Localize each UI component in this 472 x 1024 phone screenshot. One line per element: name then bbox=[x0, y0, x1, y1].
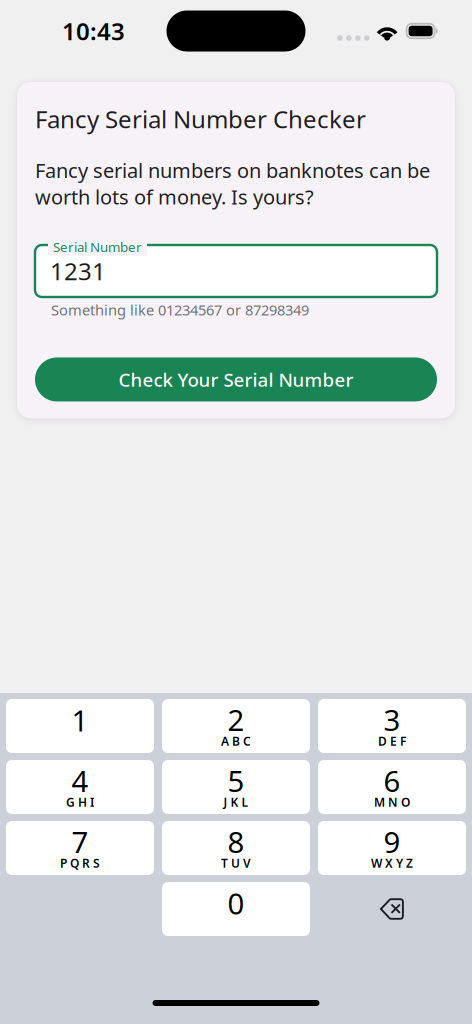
staticText: W X Y Z bbox=[371, 855, 413, 871]
staticText: 1 bbox=[71, 700, 88, 739]
staticText: T U V bbox=[221, 855, 251, 871]
staticText: Fancy Serial Number Checker bbox=[35, 103, 366, 135]
staticText: 8 bbox=[227, 822, 244, 861]
staticText: Fancy serial numbers on banknotes can be… bbox=[35, 157, 430, 210]
button[interactable]: Delete bbox=[318, 882, 466, 936]
staticText: 7 bbox=[71, 822, 88, 861]
staticText: 6 bbox=[383, 761, 400, 800]
button[interactable]: 9 bbox=[318, 821, 466, 875]
staticText: J K L bbox=[223, 794, 248, 810]
button[interactable]: Check Your Serial Number bbox=[35, 357, 437, 401]
staticText: Serial Number bbox=[53, 238, 142, 256]
staticText: Something like 01234567 or 87298349 bbox=[51, 300, 309, 319]
staticText: D E F bbox=[378, 733, 406, 749]
staticText: G H I bbox=[66, 794, 94, 810]
staticText: M N O bbox=[374, 794, 410, 810]
staticText: 3 bbox=[383, 700, 400, 739]
staticText: 0 bbox=[227, 883, 244, 922]
button[interactable]: 2 bbox=[162, 699, 310, 753]
button[interactable]: 5 bbox=[162, 760, 310, 814]
staticText: 1231 bbox=[50, 255, 106, 287]
staticText: 9 bbox=[383, 822, 400, 861]
staticText: 4 bbox=[71, 761, 88, 800]
staticText: 10:43 bbox=[62, 15, 125, 47]
button[interactable]: 4 bbox=[6, 760, 154, 814]
staticText: Check Your Serial Number bbox=[118, 367, 353, 392]
button[interactable]: 6 bbox=[318, 760, 466, 814]
button[interactable]: 3 bbox=[318, 699, 466, 753]
button[interactable]: 1 bbox=[6, 699, 154, 753]
button[interactable]: 8 bbox=[162, 821, 310, 875]
staticText: 2 bbox=[227, 700, 244, 739]
button[interactable]: 0 bbox=[162, 882, 310, 936]
button[interactable]: 7 bbox=[6, 821, 154, 875]
staticText: P Q R S bbox=[60, 855, 100, 871]
staticText: 5 bbox=[227, 761, 244, 800]
staticText: A B C bbox=[221, 733, 251, 749]
